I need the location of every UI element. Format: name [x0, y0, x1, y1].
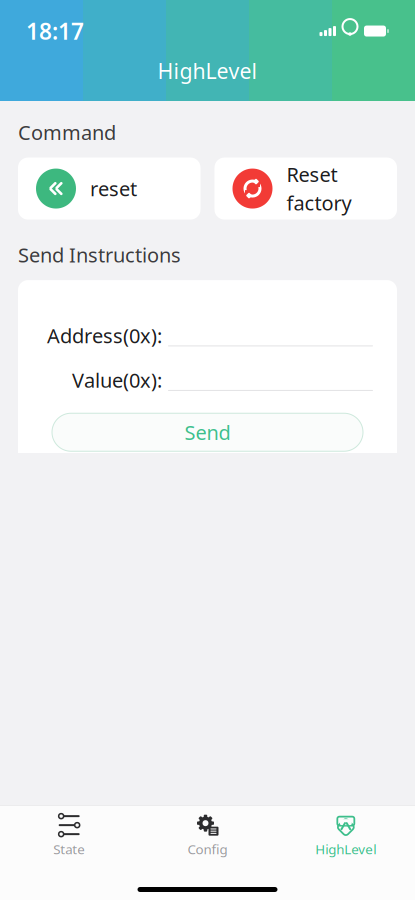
button[interactable]: Config	[138, 812, 277, 858]
staticText: reset	[90, 175, 137, 202]
staticText: Address(0x):	[47, 322, 162, 349]
staticText: Send Instructions	[18, 242, 181, 268]
staticText: Command	[18, 119, 116, 146]
button[interactable]: reset	[18, 158, 200, 220]
staticText: State	[53, 840, 85, 858]
staticText: HighLevel	[315, 840, 376, 858]
button[interactable]: State	[0, 812, 138, 858]
staticText: Reset	[286, 161, 337, 188]
staticText: HighLevel	[157, 57, 257, 85]
staticText: Config	[187, 840, 227, 858]
button[interactable]: HighLevel	[277, 812, 415, 858]
staticText: 18:17	[26, 16, 84, 46]
staticText: Send	[184, 419, 230, 446]
button[interactable]: Send	[52, 413, 363, 451]
staticText: Value(0x):	[72, 367, 162, 393]
staticText: factory	[286, 190, 351, 216]
button[interactable]: Reset factory	[214, 158, 397, 220]
